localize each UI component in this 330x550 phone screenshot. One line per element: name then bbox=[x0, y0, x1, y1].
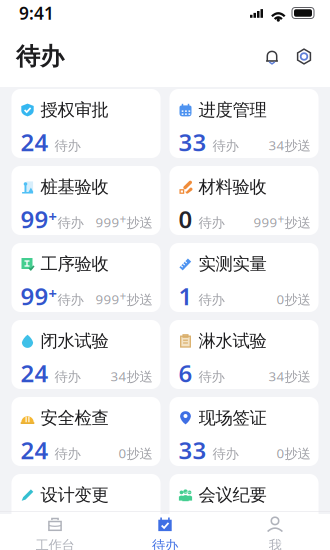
staticText: 6 bbox=[178, 357, 192, 389]
staticText: 34 bbox=[110, 367, 126, 385]
staticText: 桩基验收 bbox=[40, 176, 108, 198]
staticText: 淋水试验 bbox=[198, 330, 266, 352]
button[interactable]: 桩基验收 bbox=[11, 166, 160, 235]
staticText: 24 bbox=[20, 126, 48, 158]
staticText: 抄送 bbox=[126, 292, 152, 308]
staticText: 33 bbox=[178, 126, 206, 158]
button[interactable]: 工作台 bbox=[0, 516, 110, 550]
staticText: 99 bbox=[20, 280, 48, 312]
staticText: 待办 bbox=[54, 369, 80, 385]
staticText: 33 bbox=[178, 434, 206, 466]
staticText: 9:41 bbox=[19, 1, 54, 24]
staticText: 现场签证 bbox=[198, 407, 266, 429]
button[interactable]: 淋水试验 bbox=[169, 320, 318, 389]
staticText: 进度管理 bbox=[198, 99, 266, 121]
button[interactable]: 进度管理 bbox=[169, 89, 318, 158]
staticText: 24 bbox=[20, 357, 48, 389]
staticText: 34 bbox=[268, 367, 284, 385]
button[interactable]: 授权审批 bbox=[11, 89, 160, 158]
staticText: 抄送 bbox=[284, 292, 310, 308]
staticText: 待办 bbox=[152, 537, 178, 550]
staticText: 0 bbox=[276, 444, 284, 462]
button[interactable]: 待办 bbox=[110, 516, 220, 550]
staticText: 0 bbox=[118, 444, 126, 462]
staticText: + bbox=[119, 211, 126, 227]
staticText: 待办 bbox=[212, 138, 238, 154]
staticText: 会议纪要 bbox=[198, 484, 266, 506]
staticText: 99 bbox=[20, 203, 48, 235]
staticText: 待办 bbox=[54, 138, 80, 154]
staticText: 0 bbox=[276, 290, 284, 308]
staticText: + bbox=[277, 211, 284, 227]
staticText: 授权审批 bbox=[40, 99, 108, 121]
button[interactable]: 实测实量 bbox=[169, 243, 318, 312]
staticText: 待办 bbox=[57, 215, 83, 231]
staticText: 抄送 bbox=[284, 446, 310, 462]
button[interactable]: 安全检查 bbox=[11, 397, 160, 466]
staticText: 999 bbox=[253, 213, 277, 231]
staticText: 待办 bbox=[198, 369, 224, 385]
staticText: + bbox=[48, 283, 56, 303]
button[interactable]: 我 bbox=[220, 516, 330, 550]
staticText: 34 bbox=[268, 136, 284, 154]
staticText: 工序验收 bbox=[40, 253, 108, 275]
staticText: 待办 bbox=[198, 215, 224, 231]
button[interactable]: 设置 bbox=[288, 40, 320, 72]
button[interactable]: 工序验收 bbox=[11, 243, 160, 312]
staticText: 材料验收 bbox=[198, 176, 266, 198]
button[interactable]: 材料验收 bbox=[169, 166, 318, 235]
staticText: 999 bbox=[95, 213, 119, 231]
staticText: 999 bbox=[95, 290, 119, 308]
staticText: 0 bbox=[178, 203, 192, 235]
staticText: 待办 bbox=[198, 292, 224, 308]
button[interactable]: 会议纪要 bbox=[169, 474, 318, 543]
staticText: + bbox=[48, 206, 56, 226]
staticText: 待办 bbox=[212, 446, 238, 462]
staticText: + bbox=[119, 288, 126, 304]
staticText: 待办 bbox=[54, 446, 80, 462]
button[interactable]: 现场签证 bbox=[169, 397, 318, 466]
staticText: 设计变更 bbox=[40, 484, 108, 506]
staticText: 抄送 bbox=[126, 215, 152, 231]
staticText: 24 bbox=[20, 434, 48, 466]
button[interactable]: 设计变更 bbox=[11, 474, 160, 543]
staticText: 我 bbox=[268, 537, 281, 550]
staticText: 待办 bbox=[16, 42, 64, 71]
staticText: 抄送 bbox=[126, 446, 152, 462]
staticText: 闭水试验 bbox=[40, 330, 108, 352]
staticText: 安全检查 bbox=[40, 407, 108, 429]
staticText: 工作台 bbox=[35, 537, 74, 550]
button[interactable]: 通知 bbox=[256, 40, 288, 72]
staticText: 抄送 bbox=[126, 369, 152, 385]
button[interactable]: 闭水试验 bbox=[11, 320, 160, 389]
staticText: 抄送 bbox=[284, 215, 310, 231]
staticText: 抄送 bbox=[284, 369, 310, 385]
staticText: 1 bbox=[178, 280, 192, 312]
staticText: 实测实量 bbox=[198, 253, 266, 275]
staticText: 待办 bbox=[57, 292, 83, 308]
staticText: 抄送 bbox=[284, 138, 310, 154]
